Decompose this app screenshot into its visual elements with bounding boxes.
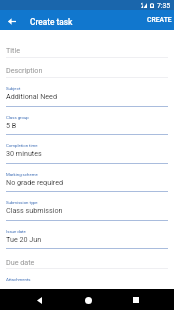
- staticText: Subject: [6, 86, 21, 91]
- staticText: Additional Need: [6, 92, 57, 100]
- button[interactable]: Due date: [0, 249, 174, 269]
- button[interactable]: CREATE: [141, 10, 174, 30]
- staticText: Class submission: [6, 206, 63, 214]
- staticText: 30 minutes: [6, 149, 42, 157]
- staticText: Description: [6, 66, 43, 74]
- staticText: Marking scheme: [6, 172, 38, 177]
- staticText: Title: [6, 46, 20, 54]
- staticText: No grade required: [6, 178, 64, 186]
- button[interactable]: Back: [30, 291, 48, 309]
- button[interactable]: Completion time: [0, 135, 174, 164]
- staticText: Create task: [30, 17, 73, 27]
- button[interactable]: Home: [79, 291, 97, 309]
- button[interactable]: Subject: [0, 78, 174, 107]
- staticText: Issue date: [6, 229, 26, 234]
- button[interactable]: Title: [0, 30, 174, 58]
- button[interactable]: Class group: [0, 107, 174, 135]
- button[interactable]: Issue date: [0, 221, 174, 249]
- staticText: Class group: [6, 115, 29, 120]
- staticText: Due date: [6, 258, 35, 266]
- staticText: Completion time: [6, 143, 38, 148]
- button[interactable]: Description: [0, 58, 174, 78]
- button[interactable]: Marking scheme: [0, 164, 174, 192]
- staticText: Attachments: [6, 277, 31, 282]
- staticText: 5 B: [6, 121, 17, 129]
- button[interactable]: Back: [0, 10, 24, 30]
- staticText: 7:35: [157, 2, 171, 10]
- staticText: Submission type: [6, 200, 38, 205]
- staticText: CREATE: [147, 16, 172, 24]
- button[interactable]: Recent apps: [127, 291, 145, 309]
- button[interactable]: Submission type: [0, 192, 174, 221]
- staticText: Tue 20 Jun: [6, 235, 42, 243]
